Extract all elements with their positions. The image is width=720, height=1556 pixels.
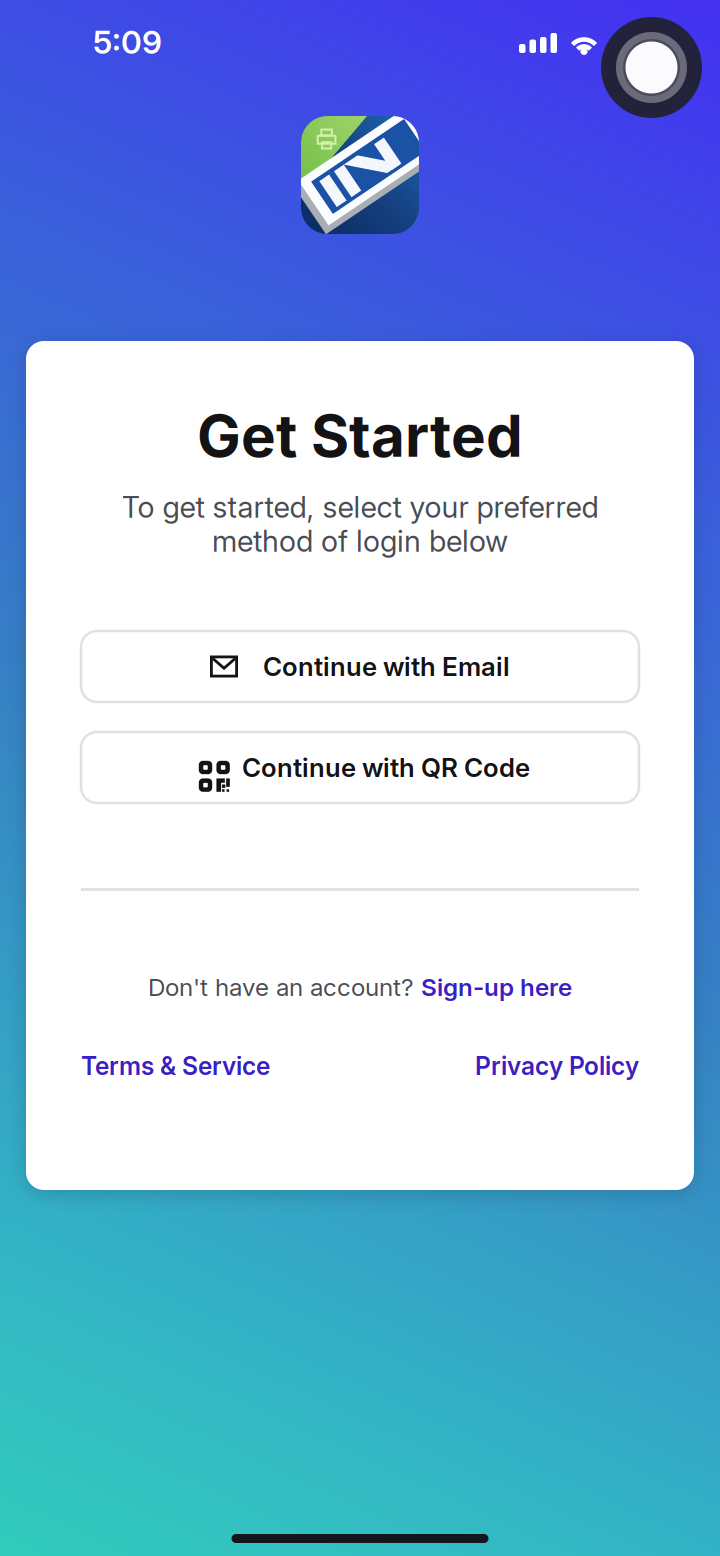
- staticText: Sign-up here: [421, 972, 572, 1002]
- button[interactable]: Don't have an account?: [148, 972, 572, 1002]
- staticText: Terms & Service: [81, 1051, 270, 1081]
- button[interactable]: Terms & Service: [81, 1051, 270, 1081]
- staticText: Continue with Email: [263, 651, 510, 682]
- staticText: Get Started: [197, 400, 523, 471]
- button[interactable]: Privacy Policy: [475, 1051, 639, 1081]
- button[interactable]: Continue with QR Code: [81, 732, 639, 803]
- staticText: method of login below: [212, 523, 508, 559]
- button[interactable]: Continue with Email: [81, 631, 639, 702]
- staticText: 5:09: [93, 23, 162, 61]
- staticText: Don't have an account?: [148, 972, 421, 1002]
- staticText: Continue with QR Code: [242, 752, 530, 783]
- staticText: To get started, select your preferred: [121, 489, 598, 525]
- staticText: Privacy Policy: [475, 1051, 639, 1081]
